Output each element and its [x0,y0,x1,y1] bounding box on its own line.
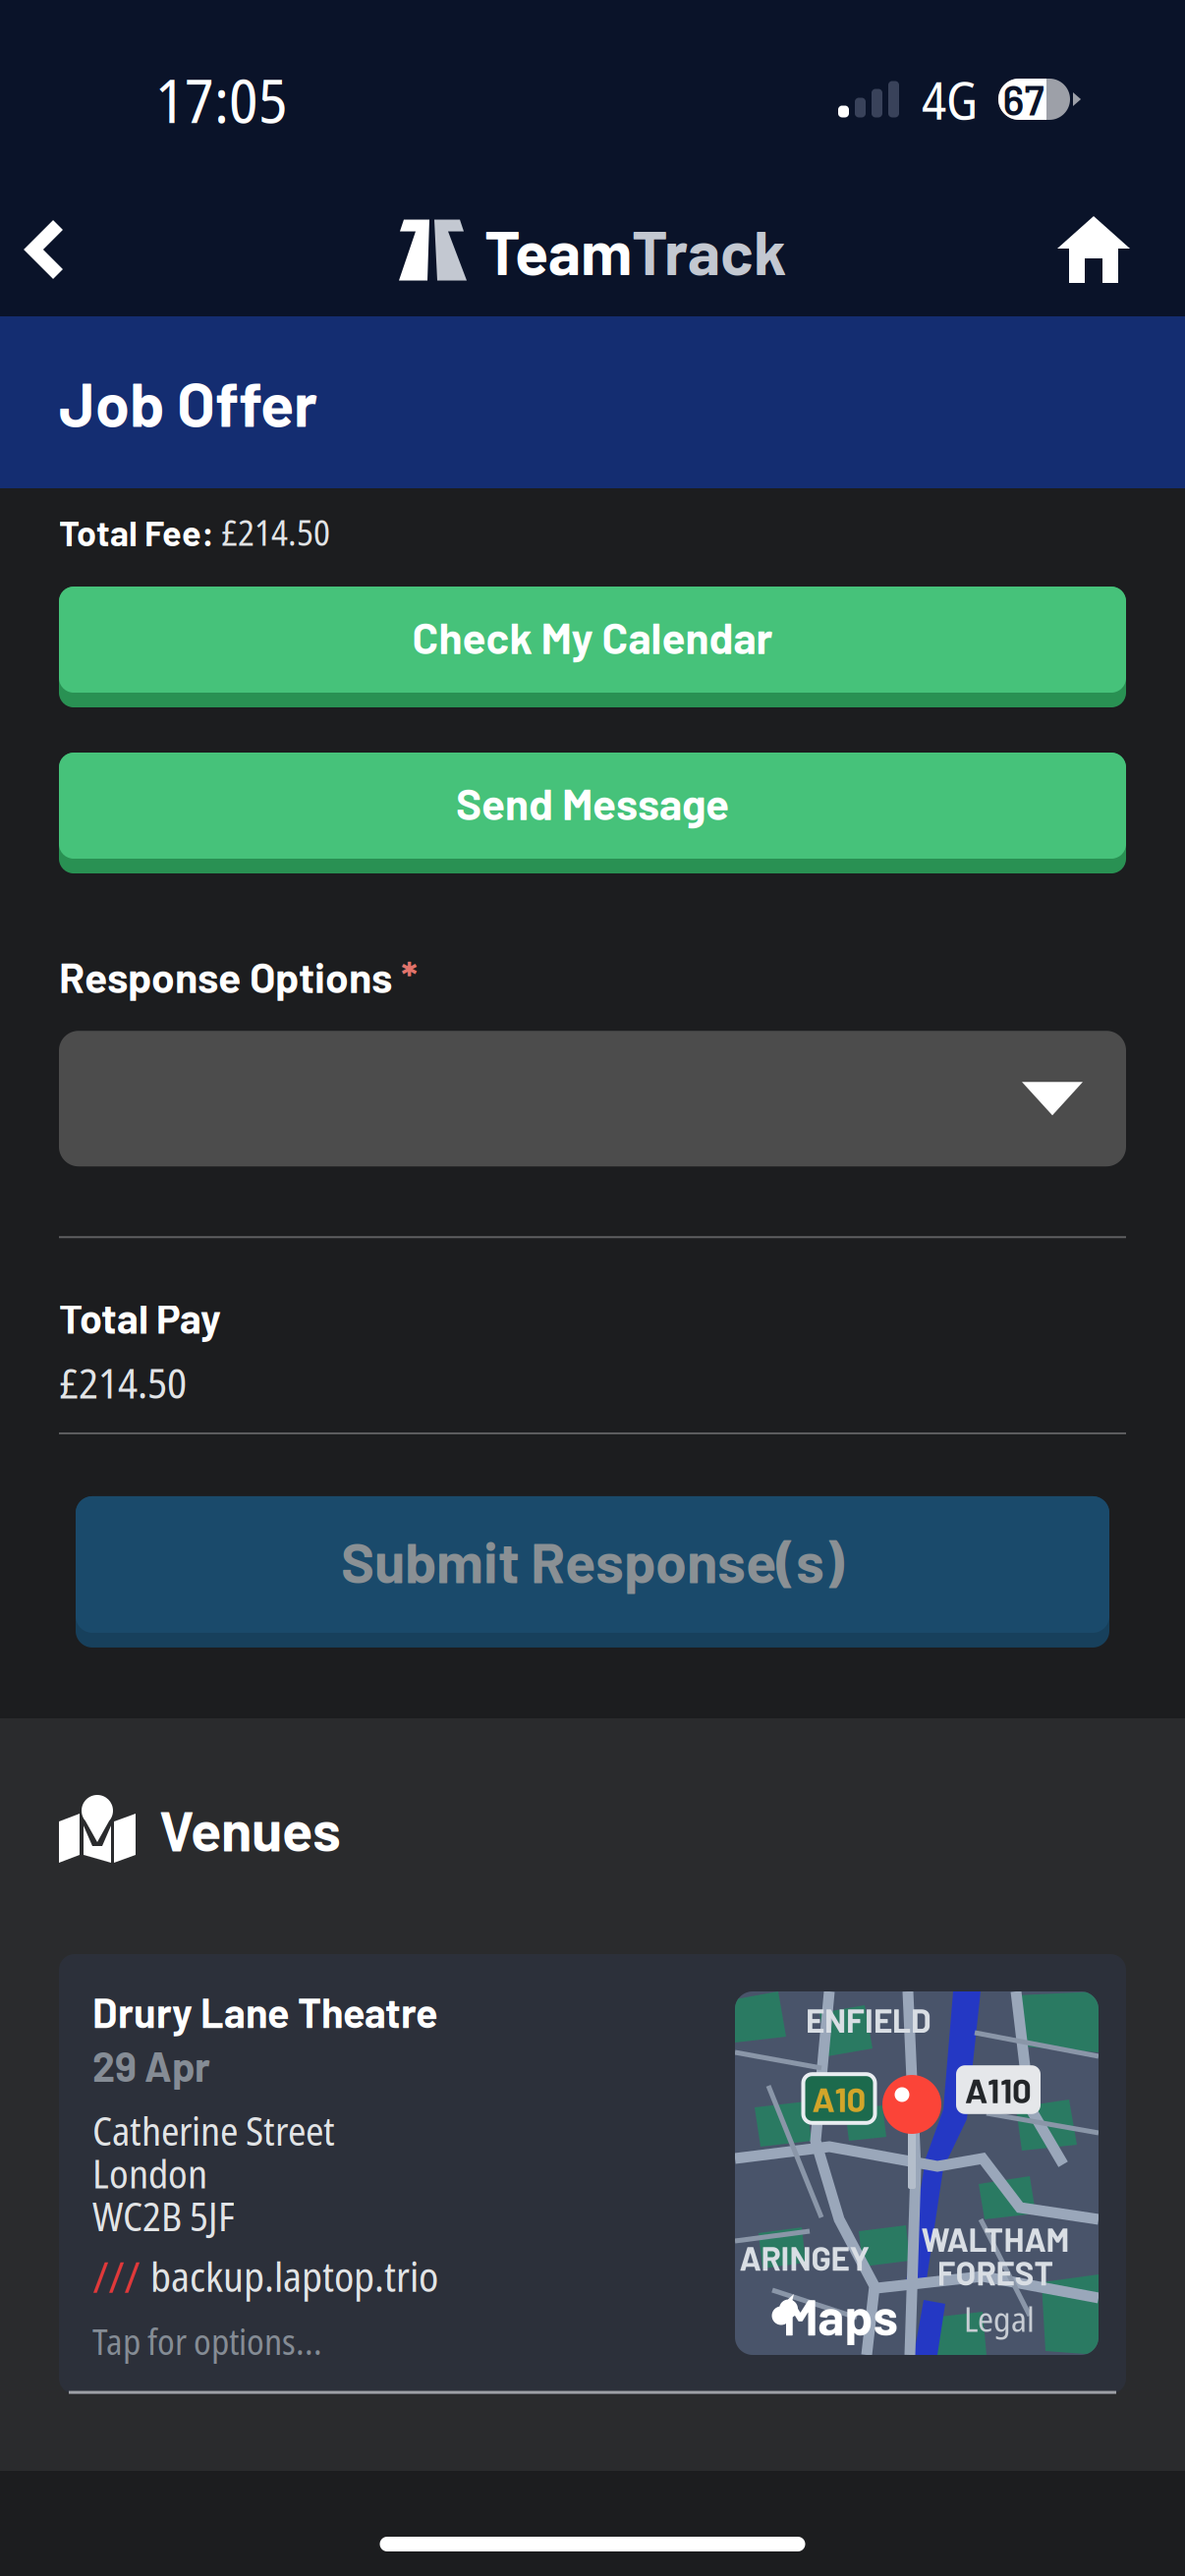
staticText: Job Offer [59,365,317,439]
staticText: /// [92,2246,140,2305]
button[interactable]: Send Message [59,753,1126,873]
staticText: * [401,951,418,1001]
staticText: A10 [812,2078,866,2119]
staticText: Legal [964,2295,1035,2342]
staticText: Track [632,214,786,287]
staticText: £214.50 [221,508,330,556]
staticText: ENFIELD [806,2000,931,2040]
staticText: Team [484,214,632,287]
staticText: Venues [159,1795,341,1863]
staticText: 4G [922,64,978,135]
staticText: Submit Response(s) [341,1527,844,1594]
staticText: ARINGEY [739,2238,870,2277]
staticText: Check My Calendar [412,611,773,663]
staticText: London [92,2146,207,2200]
staticText: FOREST [937,2253,1054,2292]
staticText: £214.50 [59,1354,187,1411]
staticText: backup.laptop.trio [150,2248,438,2304]
staticText: Total Pay [59,1293,221,1342]
button[interactable]: Check My Calendar [59,587,1126,707]
button[interactable]: Back [0,191,90,308]
staticText: 67 [1003,75,1044,124]
staticText: Total Fee: [59,511,221,553]
button[interactable] [0,1001,1185,1166]
staticText: Maps [783,2286,898,2346]
button[interactable]: Home [1032,191,1185,308]
button[interactable]: Drury Lane Theatre [59,1954,1126,2391]
staticText: 29 Apr [92,2041,210,2090]
staticText: WC2B 5JF [92,2189,235,2243]
staticText: WALTHAM [921,2219,1070,2259]
staticText: A110 [965,2069,1032,2110]
staticText: Response Options [59,951,401,1001]
staticText: Send Message [456,777,729,829]
staticText: Tap for options... [92,2317,322,2365]
staticText: Catherine Street [92,2104,335,2157]
staticText: 17:05 [155,57,288,141]
staticText: Drury Lane Theatre [92,1988,438,2036]
button[interactable]: Submit Response(s) [0,1434,1185,1647]
